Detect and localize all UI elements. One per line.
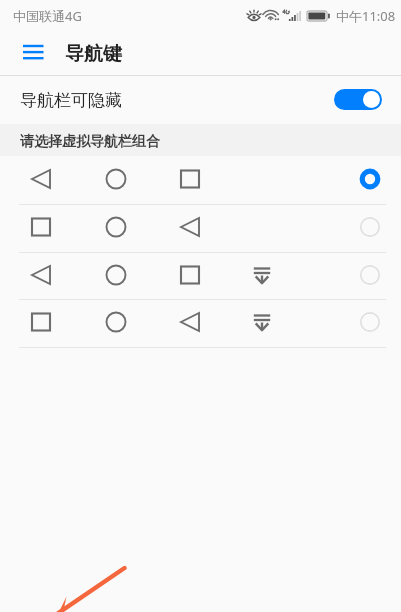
button[interactable]: 导航栏可隐藏 (0, 75, 401, 123)
button[interactable] (0, 204, 401, 252)
button[interactable]: Menu (14, 32, 52, 72)
button[interactable] (0, 252, 401, 300)
button[interactable] (0, 299, 401, 347)
staticText: 请选择虚拟导航栏组合 (20, 133, 160, 151)
staticText: 导航键 (65, 42, 122, 66)
button[interactable] (0, 156, 401, 204)
staticText: 导航栏可隐藏 (20, 90, 122, 111)
staticText: 中午11:08 (336, 7, 396, 25)
staticText: 中国联通4G (13, 7, 82, 25)
